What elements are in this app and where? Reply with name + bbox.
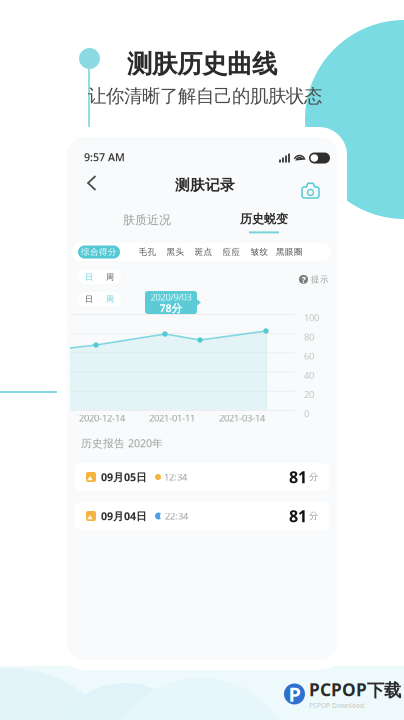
staticText: 测肤记录 — [175, 176, 235, 194]
staticText: 分 — [309, 471, 318, 483]
button[interactable]: 综合得分 — [78, 245, 120, 258]
staticText: 毛孔 — [138, 247, 156, 257]
staticText: 2020/9/03 — [150, 291, 191, 303]
staticText: 让你清晰了解自己的肌肤状态 — [88, 84, 322, 108]
staticText: 22:34 — [165, 510, 188, 522]
staticText: 09月05日 — [101, 470, 147, 484]
button[interactable]: 肤质近况 — [104, 208, 190, 232]
staticText: 81 — [289, 466, 307, 488]
button[interactable]: 痘痘 — [217, 245, 245, 258]
button[interactable]: 历史蜕变 — [221, 208, 307, 237]
staticText: 测肤历史曲线 — [127, 48, 277, 79]
button[interactable]: 09月05日 — [75, 463, 329, 491]
staticText: ? — [301, 273, 305, 286]
staticText: 历史蜕变 — [240, 212, 288, 226]
staticText: 痘痘 — [222, 247, 240, 257]
staticText: 60 — [304, 350, 314, 362]
staticText: 斑点 — [194, 247, 212, 257]
staticText: 日 — [85, 294, 93, 304]
staticText: P — [288, 681, 300, 707]
staticText: 周 — [106, 294, 114, 304]
staticText: 20 — [304, 388, 314, 401]
staticText: 历史报告 2020年 — [81, 436, 163, 450]
staticText: 皱纹 — [250, 247, 268, 257]
button[interactable]: 日 — [78, 270, 121, 284]
button[interactable]: 黑头 — [161, 245, 189, 258]
button[interactable]: 黑眼圈 — [273, 245, 305, 258]
button[interactable]: 皱纹 — [245, 245, 273, 258]
staticText: 黑头 — [166, 247, 184, 257]
staticText: 9:57 AM — [84, 150, 125, 164]
staticText: 分 — [309, 510, 318, 522]
button[interactable]: Back — [79, 167, 104, 199]
button[interactable]: 09月04日 — [75, 502, 329, 530]
staticText: 40 — [304, 369, 314, 381]
staticText: PCPOP下载 — [309, 678, 401, 701]
button[interactable]: 毛孔 — [133, 245, 161, 258]
staticText: 提示 — [311, 274, 329, 285]
staticText: 综合得分 — [81, 247, 117, 257]
staticText: 100 — [304, 311, 319, 324]
button[interactable]: ? — [299, 274, 329, 285]
staticText: PCPOP Download — [309, 701, 364, 710]
staticText: 肤质近况 — [123, 213, 171, 227]
button[interactable]: 日 — [78, 292, 121, 306]
staticText: 81 — [289, 505, 307, 527]
staticText: 80 — [304, 331, 314, 343]
staticText: 12:34 — [164, 471, 187, 483]
staticText: 黑眼圈 — [276, 247, 303, 257]
button[interactable]: 斑点 — [189, 245, 217, 258]
staticText: 0 — [304, 407, 309, 420]
staticText: 2020-12-14 — [79, 412, 125, 424]
staticText: 日 — [85, 272, 93, 282]
staticText: 78分 — [159, 301, 182, 315]
staticText: 2021-01-11 — [149, 412, 195, 424]
staticText: 周 — [106, 272, 114, 282]
button[interactable]: Camera — [294, 175, 327, 206]
staticText: 2021-03-14 — [219, 412, 265, 424]
staticText: 09月04日 — [101, 509, 147, 523]
